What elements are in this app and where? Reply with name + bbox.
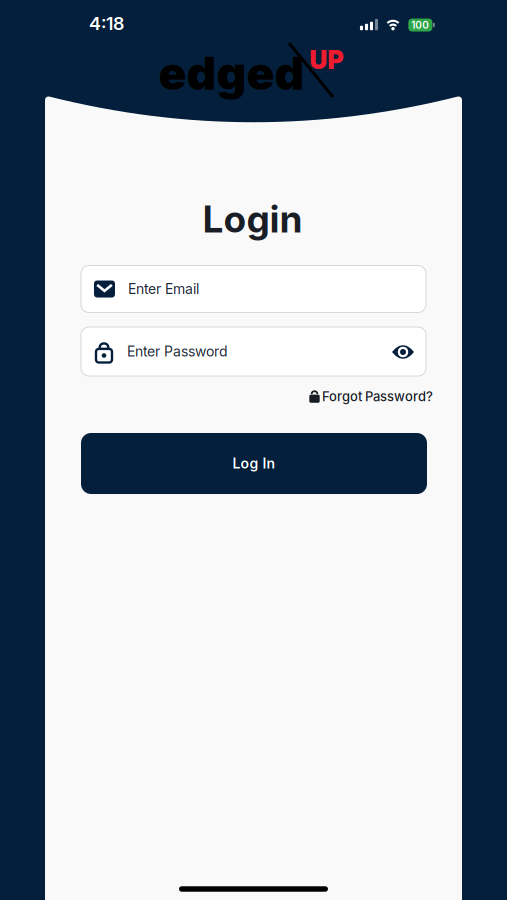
staticText: 100	[411, 19, 429, 31]
staticText: UP	[309, 45, 343, 75]
staticText: Login	[202, 197, 302, 241]
staticText: Log In	[232, 455, 275, 472]
staticText: Enter Password	[127, 343, 228, 360]
button[interactable]: Log In	[81, 433, 427, 494]
button[interactable]: Enter Password	[81, 327, 426, 376]
staticText: 4:18	[89, 13, 124, 34]
staticText: Forgot Password?	[322, 389, 433, 404]
staticText: Enter Email	[128, 281, 199, 297]
staticText: edged	[158, 46, 304, 100]
button[interactable]: Forgot Password?	[309, 389, 433, 404]
button[interactable]: Show password	[386, 338, 420, 366]
button[interactable]: Enter Email	[81, 265, 426, 312]
